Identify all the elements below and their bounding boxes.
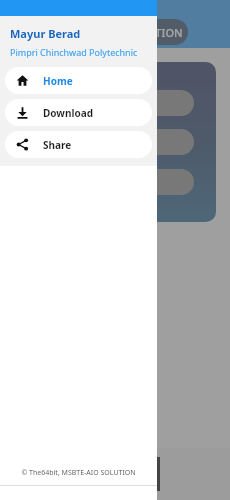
- staticText: Semester: [93, 96, 138, 110]
- staticText: Share: [43, 138, 72, 152]
- staticText: Home: [43, 74, 73, 88]
- other: Home: [16, 74, 29, 87]
- button[interactable]: Semester: [36, 90, 194, 116]
- staticText: Pimpri Chinchwad Polytechnic: [10, 46, 138, 58]
- button[interactable]: Download: [5, 99, 152, 126]
- staticText: Mayur Berad: [10, 26, 81, 41]
- staticText: Test ad: [90, 467, 124, 481]
- button[interactable]: Share: [5, 131, 152, 158]
- button[interactable]: Home: [5, 67, 152, 94]
- button[interactable]: Open: [36, 169, 194, 195]
- other: Download: [16, 106, 29, 119]
- staticText: Download: [43, 106, 93, 120]
- staticText: MSBTE-AIO SOLUTION: [65, 25, 183, 40]
- staticText: © The64bit, MSBTE-AIO SOLUTION: [21, 468, 136, 478]
- other: Share: [16, 138, 29, 151]
- button[interactable]: Practical: [36, 129, 194, 155]
